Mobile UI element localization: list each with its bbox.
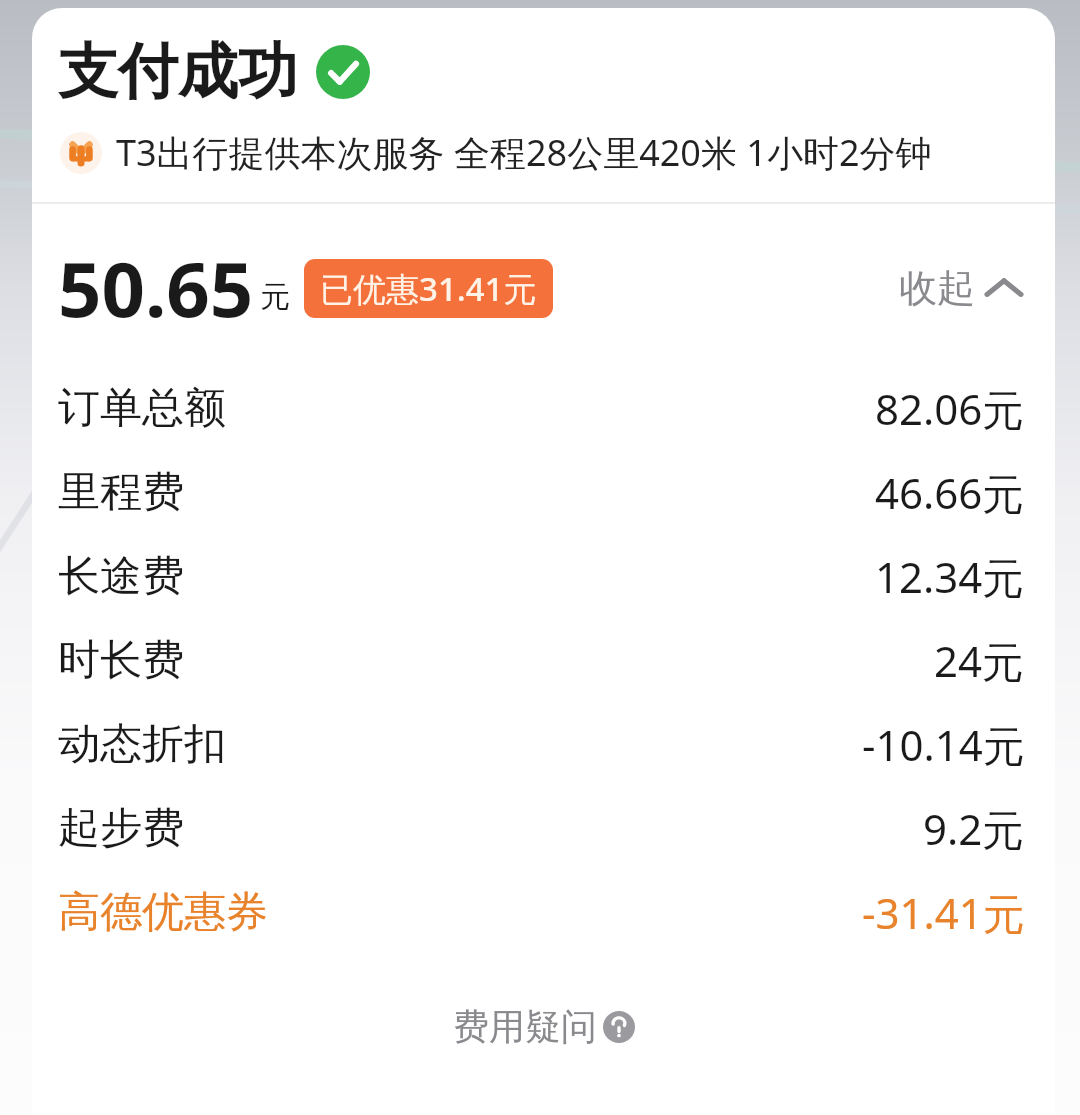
staticText: 82.06元 xyxy=(875,380,1025,437)
staticText: 24元 xyxy=(934,632,1025,689)
staticText: 50.65 xyxy=(58,236,254,340)
button[interactable]: 高德优惠券 xyxy=(32,870,1055,954)
staticText: 元 xyxy=(260,278,290,316)
staticText: 46.66元 xyxy=(875,464,1025,521)
staticText: 订单总额 xyxy=(58,382,226,435)
staticText: 9.2元 xyxy=(923,800,1025,857)
button[interactable]: 已优惠31.41元 xyxy=(304,259,553,318)
staticText: 支付成功 xyxy=(58,34,298,110)
staticText: T3出行提供本次服务 全程28公里420米 1小时2分钟 xyxy=(116,128,932,177)
staticText: 收起 xyxy=(899,264,975,312)
button[interactable]: 时长费 xyxy=(32,618,1055,702)
staticText: 高德优惠券 xyxy=(58,886,268,939)
button[interactable]: 起步费 xyxy=(32,786,1055,870)
button[interactable]: 里程费 xyxy=(32,450,1055,534)
button[interactable]: 动态折扣 xyxy=(32,702,1055,786)
staticText: 时长费 xyxy=(58,634,184,687)
staticText: -31.41元 xyxy=(862,884,1025,941)
staticText: 长途费 xyxy=(58,550,184,603)
staticText: 里程费 xyxy=(58,466,184,519)
staticText: 已优惠31.41元 xyxy=(320,266,537,311)
staticText: 费用疑问 xyxy=(453,1004,597,1049)
button[interactable]: 订单总额 xyxy=(32,366,1055,450)
button[interactable]: 收起 xyxy=(895,254,1025,322)
staticText: -10.14元 xyxy=(862,716,1025,773)
other: 费用疑问帮助 xyxy=(603,1011,635,1043)
button[interactable]: 费用疑问 xyxy=(437,996,651,1057)
button[interactable]: 长途费 xyxy=(32,534,1055,618)
staticText: 动态折扣 xyxy=(58,718,226,771)
staticText: 12.34元 xyxy=(875,548,1025,605)
staticText: 起步费 xyxy=(58,802,184,855)
